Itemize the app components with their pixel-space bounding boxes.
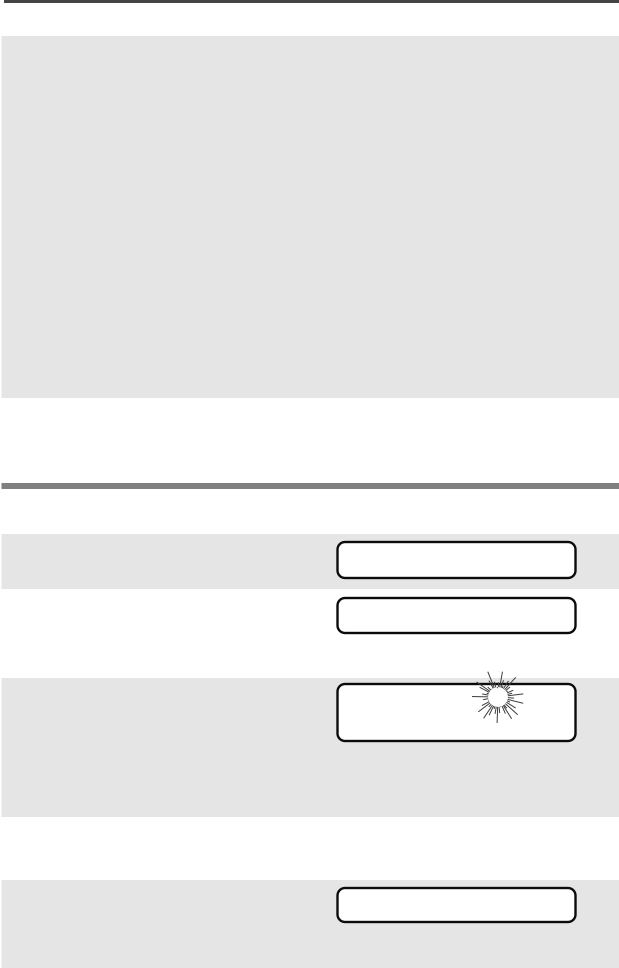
button[interactable]: Message (337, 598, 575, 633)
button[interactable]: Message (337, 542, 575, 578)
button[interactable]: Message (337, 684, 575, 741)
button[interactable]: Message (337, 888, 575, 922)
